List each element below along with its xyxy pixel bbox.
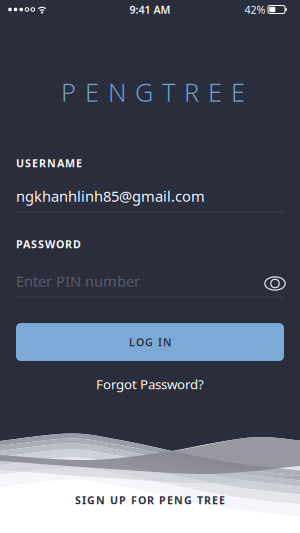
staticText: LOG IN [129,335,171,349]
staticText: ngkhanhlinh85@gmail.com [16,186,205,206]
staticText: USERNAME [16,156,82,170]
staticText: PENGTREE [61,75,245,109]
button[interactable]: LOG IN [16,323,284,361]
button[interactable]: SIGN UP FOR PENG TREE [75,493,225,507]
staticText: 42% [244,2,265,17]
staticText: Forgot Password? [96,375,204,393]
staticText: Enter PIN number [16,271,140,291]
staticText: PASSWORD [16,237,81,251]
button[interactable]: Show password [258,270,292,296]
staticText: 9:41 AM [129,2,170,17]
button[interactable]: Forgot Password? [96,375,204,393]
staticText: SIGN UP FOR PENG TREE [75,493,225,507]
